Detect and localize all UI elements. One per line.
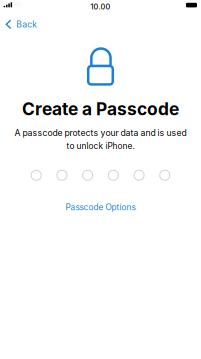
button[interactable]: Passcode Options <box>55 197 145 217</box>
button[interactable]: Back <box>0 17 52 31</box>
staticText: Back <box>16 19 37 30</box>
staticText: Create a Passcode <box>22 98 179 119</box>
staticText: A passcode protects your data and is use… <box>14 128 186 138</box>
staticText: to unlock iPhone. <box>66 141 134 151</box>
staticText: Passcode Options <box>65 202 135 212</box>
staticText: 10.00 <box>90 2 110 11</box>
